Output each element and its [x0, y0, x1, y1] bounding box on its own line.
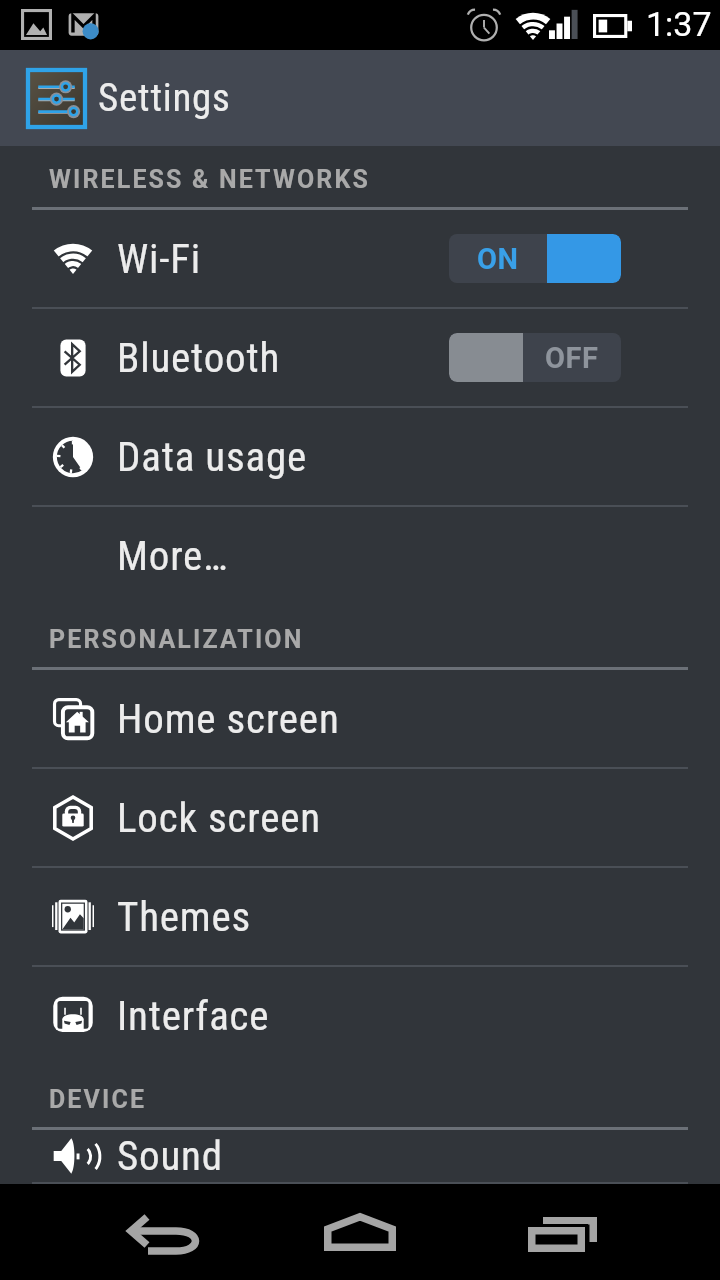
staticText: PERSONALIZATION	[49, 625, 304, 654]
button[interactable]: Home	[270, 1184, 400, 1280]
button[interactable]: Back	[70, 1184, 200, 1280]
staticText: DEVICE	[49, 1085, 147, 1114]
staticText: Bluetooth	[117, 334, 449, 382]
staticText: Sound	[117, 1132, 720, 1180]
staticText: Settings	[98, 75, 231, 121]
button[interactable]: Home screen	[0, 670, 720, 769]
staticText: More…	[117, 532, 720, 580]
staticText: WIRELESS & NETWORKS	[49, 165, 370, 194]
staticText: 1:37	[646, 4, 712, 44]
staticText: Themes	[117, 893, 720, 941]
staticText: ON	[477, 242, 519, 276]
button[interactable]: Data usage	[0, 408, 720, 507]
button[interactable]: Sound	[0, 1130, 720, 1184]
staticText: Lock screen	[117, 794, 720, 842]
staticText: Data usage	[117, 433, 720, 481]
button[interactable]: Lock screen	[0, 769, 720, 868]
button[interactable]: Interface	[0, 967, 720, 1066]
button[interactable]: Wi-Fi	[0, 210, 720, 309]
staticText: Home screen	[117, 695, 720, 743]
staticText: OFF	[545, 341, 599, 375]
button[interactable]: ON	[449, 234, 621, 283]
staticText: Wi-Fi	[117, 235, 449, 283]
button[interactable]: More…	[0, 507, 720, 606]
staticText: Interface	[117, 992, 720, 1040]
button[interactable]: Bluetooth	[0, 309, 720, 408]
button[interactable]: Themes	[0, 868, 720, 967]
button[interactable]: OFF	[449, 333, 621, 382]
button[interactable]: Recents	[470, 1184, 600, 1280]
